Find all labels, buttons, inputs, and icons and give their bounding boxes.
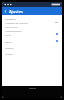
staticText: Notificaciones [5,29,22,32]
staticText: Ajustes [9,9,23,14]
button[interactable]: Conexión [2,16,62,20]
button[interactable]: Cuenta [2,45,62,49]
staticText: Datos [5,40,12,43]
button[interactable]: Nombre de usuario [2,20,62,24]
button[interactable]: Sincronizar [2,24,62,28]
staticText: Conexión [5,17,17,20]
button[interactable]: Datos [2,39,62,43]
staticText: Nombre de usuario [5,21,28,24]
staticText: Wi-Fi [5,33,11,36]
staticText: Sincronizar [5,25,19,28]
button[interactable]: Ayuda [2,51,62,55]
staticText: Cuenta [5,46,14,49]
button[interactable]: Back [2,7,9,15]
button[interactable]: Wi-Fi [2,32,62,36]
staticText: Ayuda [5,52,13,55]
button[interactable]: Notificaciones [2,28,62,32]
